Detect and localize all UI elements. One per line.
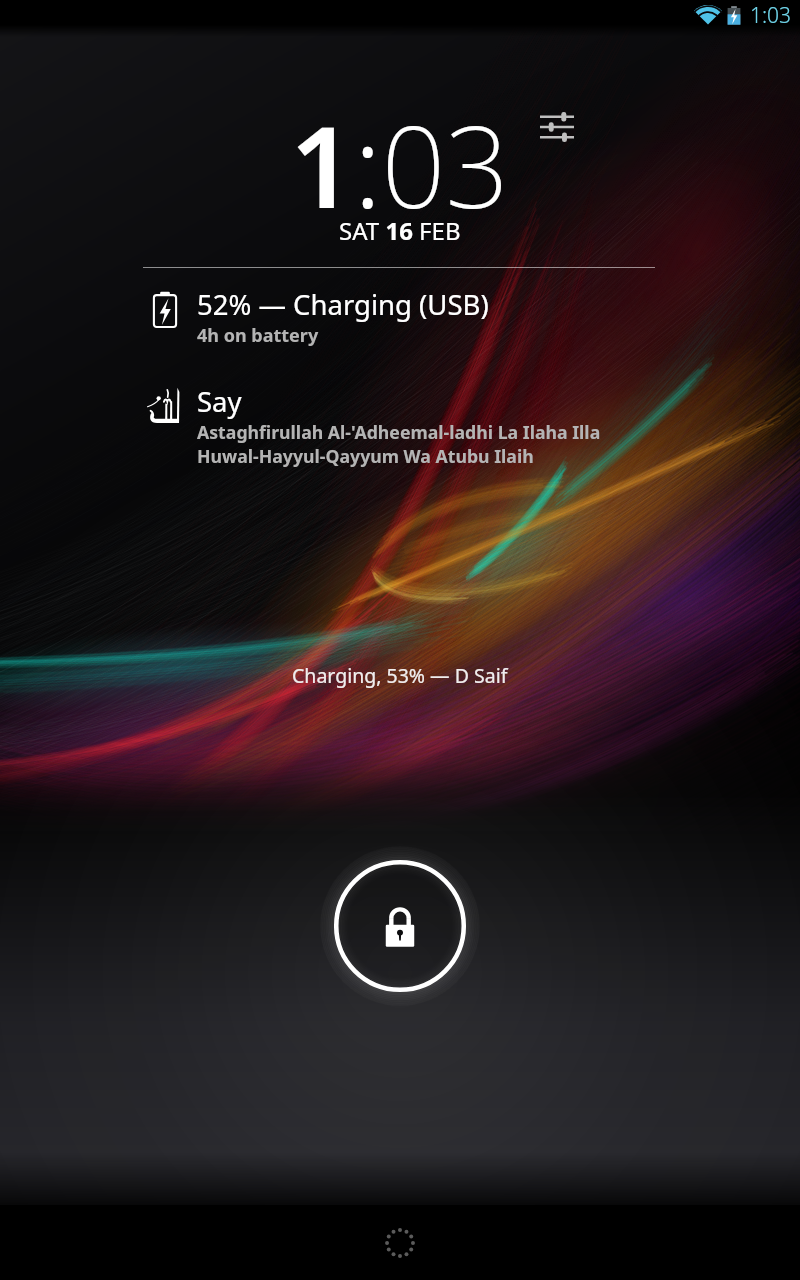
- button[interactable]: Say: [143, 383, 663, 468]
- staticText: 4h on battery: [197, 323, 319, 348]
- button[interactable]: Settings: [530, 100, 584, 154]
- button[interactable]: Home: [369, 1212, 431, 1274]
- staticText: SAT 16 FEB: [339, 214, 461, 247]
- staticText: Charging, 53% — D Saif: [292, 662, 508, 689]
- button[interactable]: Unlock: [320, 846, 480, 1006]
- button[interactable]: 52% — Charging (USB): [143, 286, 663, 348]
- staticText: 1:03: [750, 1, 792, 30]
- staticText: 52% — Charging (USB): [197, 286, 489, 323]
- staticText: Say: [197, 383, 242, 420]
- staticText: 1:03: [290, 88, 510, 241]
- staticText: Astaghfirullah Al-'Adheemal-ladhi La Ila…: [197, 420, 601, 468]
